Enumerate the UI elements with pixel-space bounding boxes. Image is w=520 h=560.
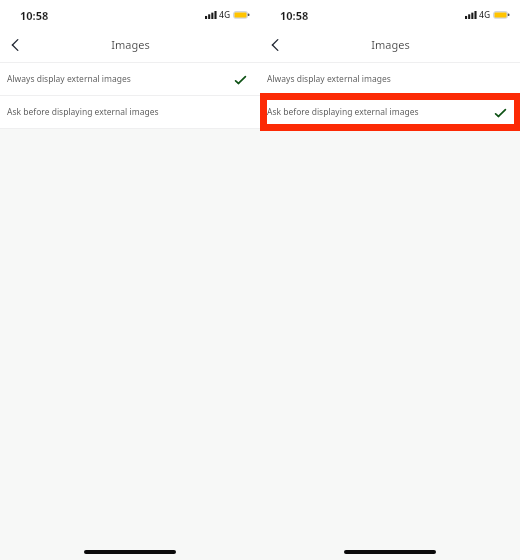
staticText: Images (371, 37, 410, 52)
staticText: Ask before displaying external images (7, 106, 159, 118)
staticText: 10:58 (280, 8, 309, 23)
button[interactable]: Always display external images (260, 63, 520, 95)
staticText: 4G (219, 9, 231, 21)
button[interactable]: Ask before displaying external images (260, 96, 520, 128)
staticText: 10:58 (20, 8, 49, 23)
button[interactable]: Always display external images (0, 63, 260, 95)
button[interactable]: Back (3, 33, 27, 57)
staticText: Always display external images (7, 73, 131, 85)
button[interactable]: Ask before displaying external images (0, 96, 260, 128)
staticText: Ask before displaying external images (267, 106, 419, 118)
staticText: Always display external images (267, 73, 391, 85)
staticText: 4G (479, 9, 491, 21)
button[interactable]: Back (263, 33, 287, 57)
staticText: Images (111, 37, 150, 52)
